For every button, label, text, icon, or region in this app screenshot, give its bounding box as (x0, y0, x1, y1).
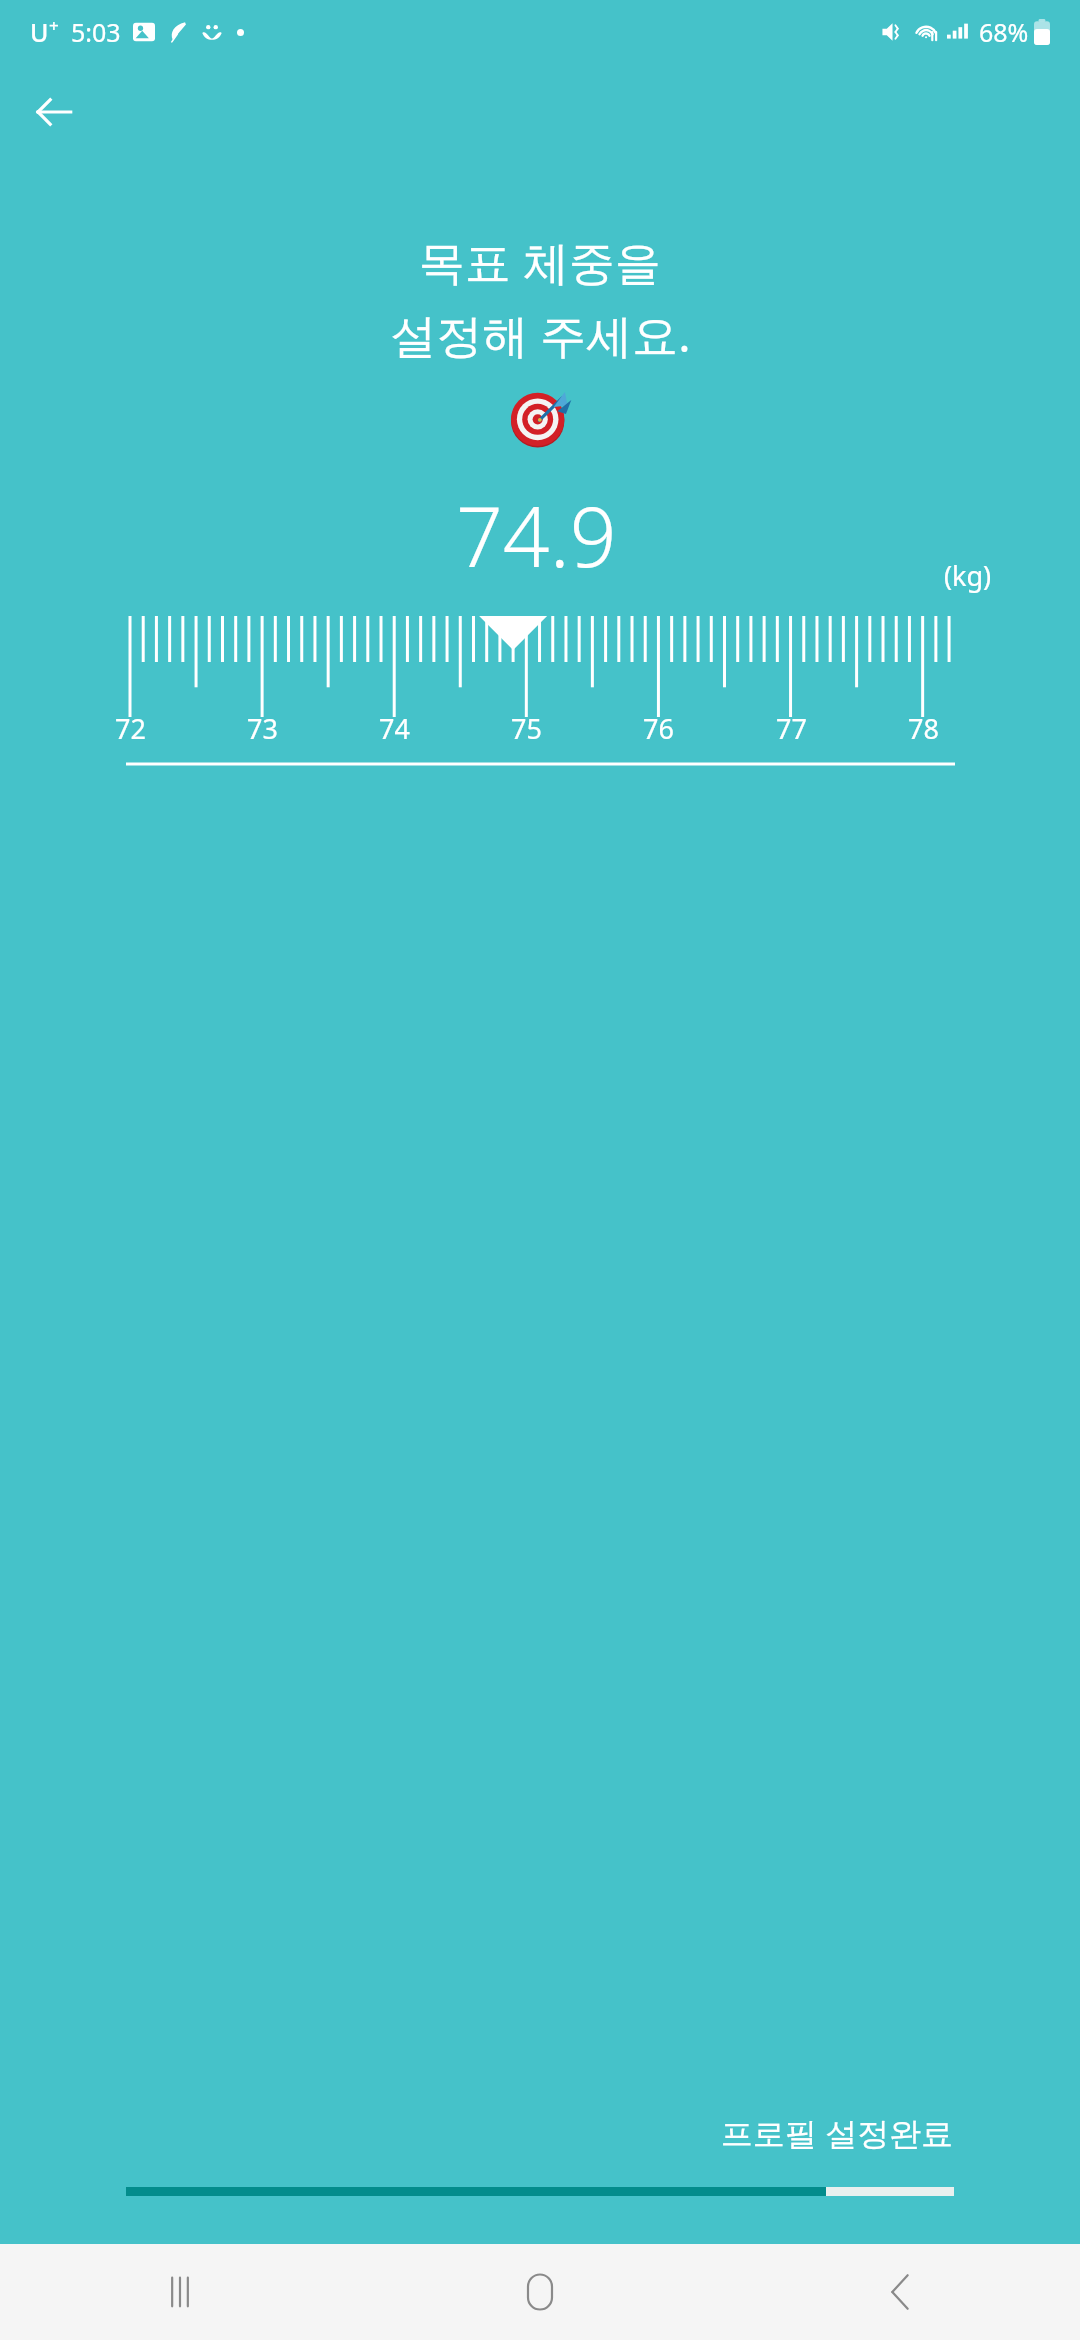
button[interactable]: Back (720, 2244, 1080, 2340)
staticText: 76 (643, 710, 674, 747)
button[interactable]: 프로필 설정완료 (713, 2105, 962, 2161)
button[interactable]: Back (22, 80, 86, 144)
staticText: 설정해 주세요. (390, 303, 691, 366)
staticText: 5:03 (71, 15, 121, 49)
staticText: 68% (979, 15, 1029, 49)
staticText: 목표 체중을 (419, 230, 661, 293)
staticText: U (30, 15, 49, 49)
staticText: 73 (247, 710, 278, 747)
staticText: 78 (908, 710, 939, 747)
staticText: 72 (115, 710, 146, 747)
staticText: 74.9 (456, 479, 617, 591)
staticText: (kg) (944, 557, 992, 594)
staticText: 75 (511, 710, 542, 747)
staticText: + (49, 14, 59, 37)
staticText: 74 (379, 710, 410, 747)
staticText: 프로필 설정완료 (721, 2111, 954, 2155)
staticText: 77 (776, 710, 807, 747)
button[interactable]: Recent apps (0, 2244, 360, 2340)
button[interactable]: Home (360, 2244, 720, 2340)
